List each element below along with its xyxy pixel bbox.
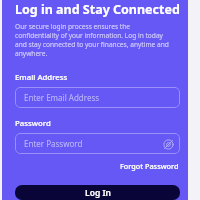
staticText: Forgot Password (120, 161, 179, 171)
button[interactable]: Forgot Password (119, 160, 180, 172)
staticText: Email Address (15, 72, 68, 83)
staticText: Log In (85, 187, 111, 199)
button[interactable]: Toggle password visibility (161, 137, 175, 151)
button[interactable]: Enter Password (15, 133, 180, 154)
button[interactable]: Enter Email Address (15, 87, 180, 108)
staticText: Log in and Stay Connected (15, 1, 180, 18)
staticText: Password (15, 118, 51, 129)
staticText: Enter Password (24, 138, 83, 149)
staticText: Enter Email Address (24, 92, 100, 103)
staticText: Our secure login process ensures the con… (15, 22, 175, 58)
button[interactable]: Log In (15, 185, 180, 200)
